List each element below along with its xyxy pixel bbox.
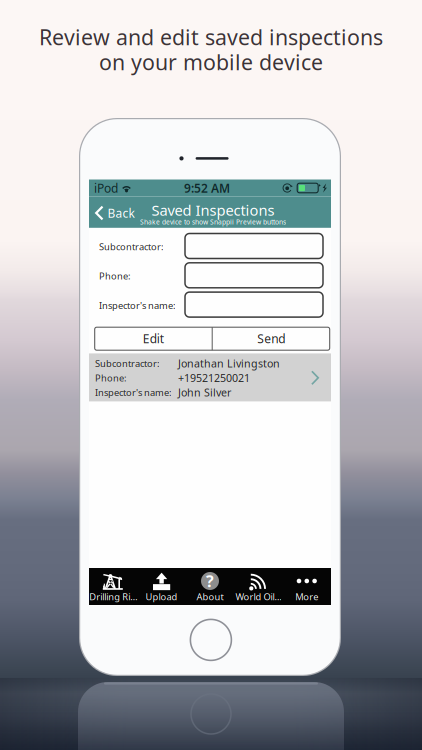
staticText: iPod <box>94 180 118 196</box>
staticText: Drilling Ri… <box>89 590 137 603</box>
button[interactable]: Drilling Ri… <box>89 568 137 605</box>
button[interactable]: Back <box>89 199 142 226</box>
staticText: Inspector's name: <box>95 386 172 399</box>
staticText: About <box>196 590 223 603</box>
button[interactable]: World Oil… <box>234 568 283 605</box>
staticText: on your mobile device <box>99 48 323 76</box>
staticText: More <box>295 590 318 603</box>
button[interactable]: ? <box>186 568 234 605</box>
button[interactable]: Send <box>213 327 330 350</box>
staticText: Subcontractor: <box>99 240 164 253</box>
button[interactable]: Upload <box>137 568 186 605</box>
staticText: Review and edit saved inspections <box>39 23 383 51</box>
staticText: 9:52 AM <box>184 180 230 196</box>
button[interactable]: More <box>283 568 331 605</box>
staticText: Shake device to show Snappii Preview but… <box>140 218 286 226</box>
button[interactable]: Subcontractor: <box>89 353 331 401</box>
button[interactable]: Edit <box>95 327 212 350</box>
staticText: +19521250021 <box>178 371 250 385</box>
staticText: Subcontractor: <box>95 357 160 370</box>
staticText: Back <box>107 205 134 221</box>
staticText: ? <box>206 570 214 592</box>
staticText: Jonathan Livingston <box>178 356 280 370</box>
staticText: Upload <box>146 590 178 603</box>
staticText: John Silver <box>178 385 231 399</box>
staticText: Edit <box>143 331 164 347</box>
staticText: Saved Inspections <box>151 200 274 220</box>
staticText: Phone: <box>95 372 127 384</box>
staticText: Send <box>257 331 285 347</box>
staticText: Phone: <box>99 270 131 282</box>
staticText: Inspector's name: <box>99 299 176 311</box>
staticText: World Oil… <box>235 590 281 603</box>
